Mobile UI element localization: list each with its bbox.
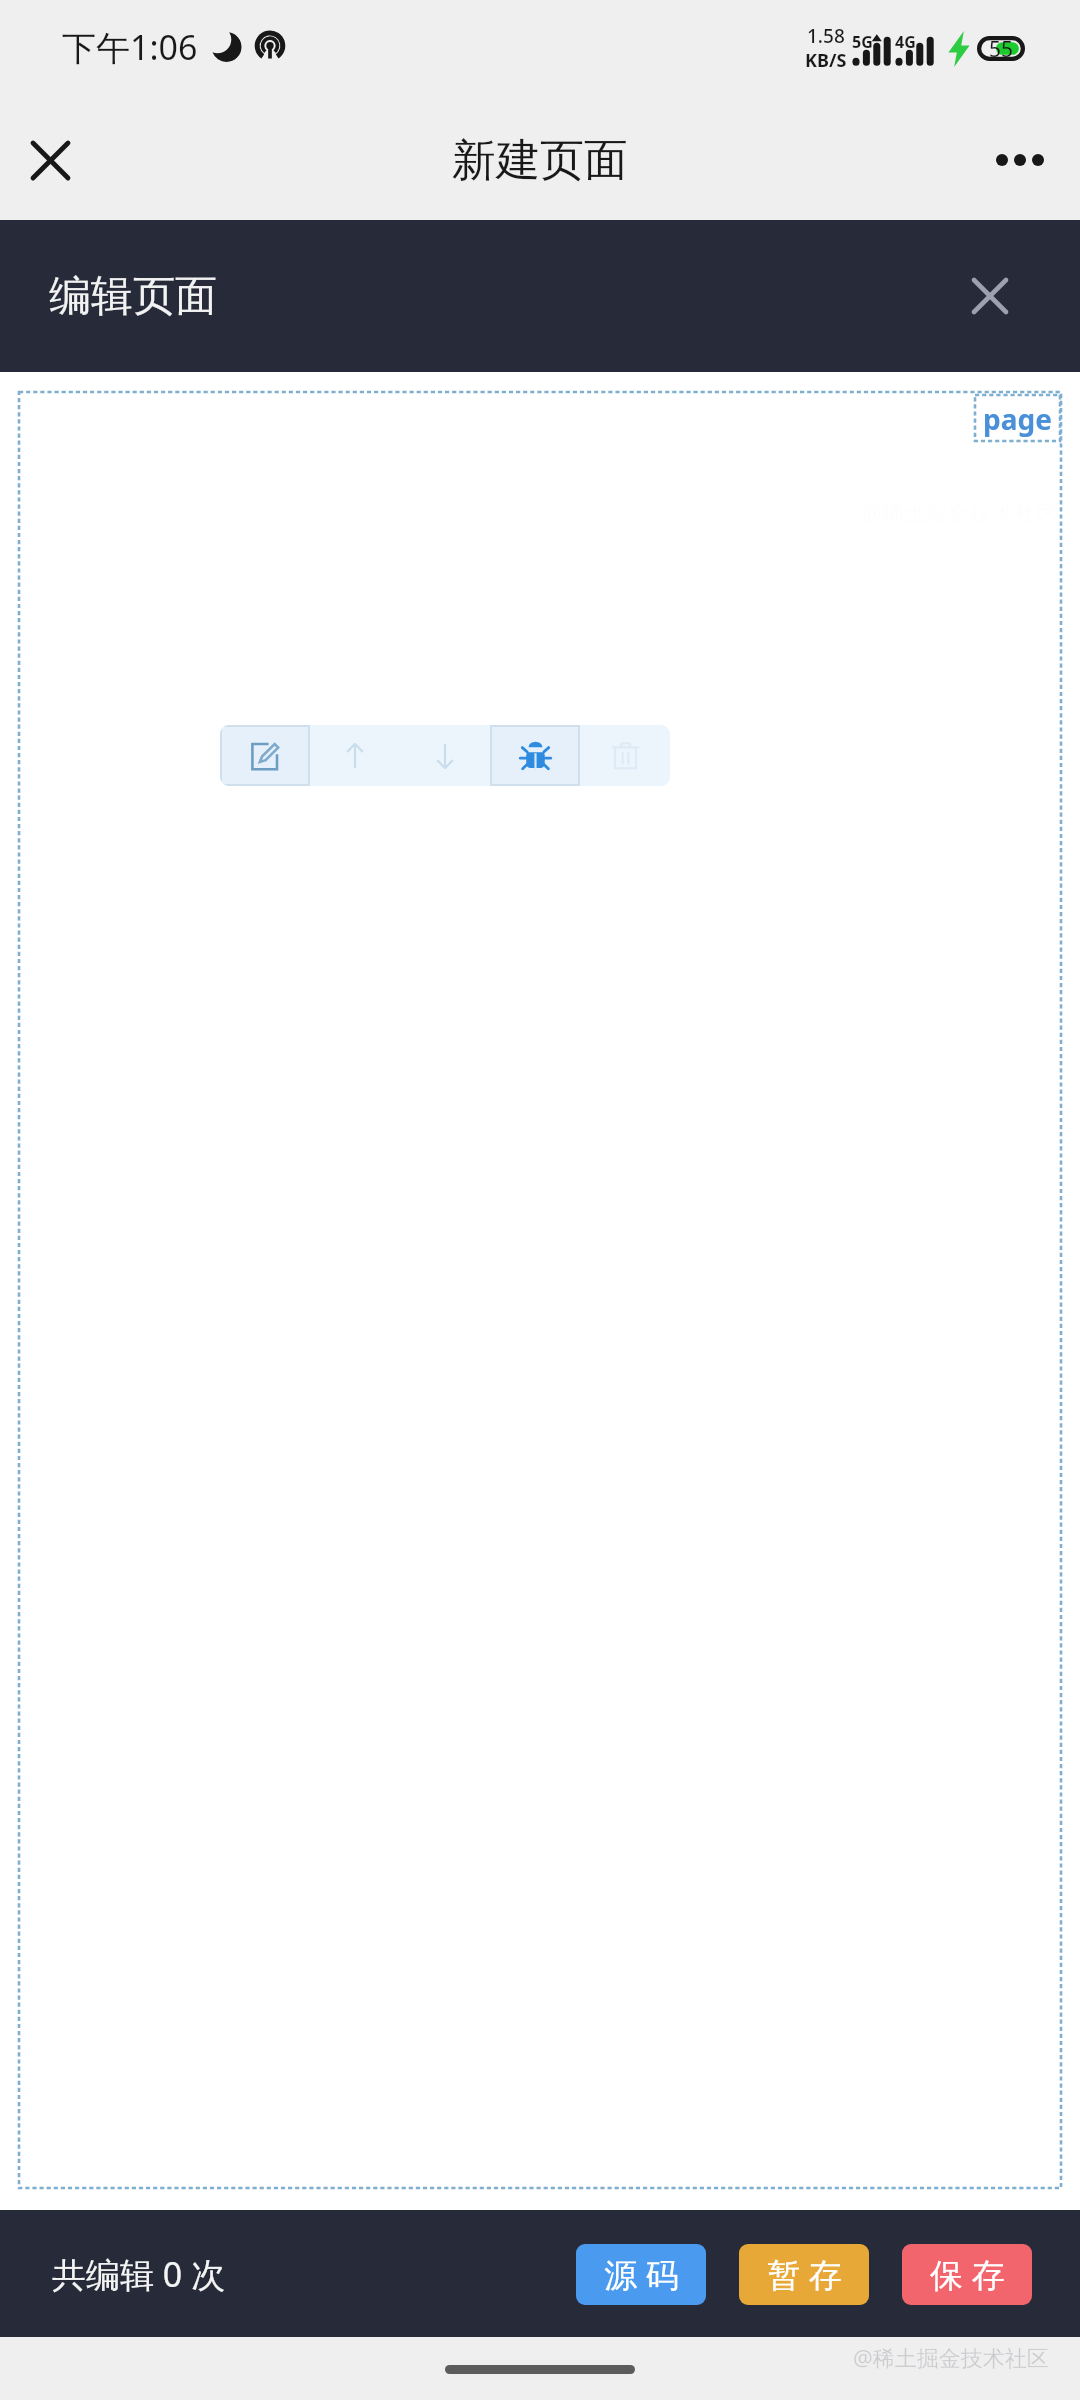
button[interactable]: Delete — [580, 725, 670, 786]
staticText: @稀土掘金技术社区 — [853, 2342, 1049, 2372]
staticText: 1.58 — [807, 23, 845, 49]
staticText: 新建页面 — [452, 133, 628, 188]
staticText: 5G — [852, 31, 873, 53]
button[interactable]: Close editor — [950, 256, 1030, 336]
staticText: 共编辑 0 次 — [52, 2251, 226, 2297]
button[interactable]: Debug — [490, 725, 580, 786]
staticText: page — [983, 400, 1052, 438]
button[interactable]: 源 码 — [576, 2244, 706, 2305]
button[interactable]: Close — [14, 124, 86, 196]
button[interactable]: page — [975, 395, 1060, 441]
staticText: KB/S — [805, 48, 847, 73]
staticText: 保 存 — [930, 2252, 1005, 2297]
button[interactable]: Move up — [310, 725, 400, 786]
button[interactable]: Edit — [220, 725, 310, 786]
staticText: 4G — [895, 31, 916, 53]
staticText: 源 码 — [604, 2252, 679, 2297]
button[interactable]: More options — [984, 124, 1056, 196]
staticText: 暂 存 — [767, 2252, 842, 2297]
staticText: 55 — [989, 35, 1014, 60]
button[interactable]: 暂 存 — [739, 2244, 869, 2305]
staticText: 下午1:06 — [62, 24, 198, 70]
button[interactable]: 保 存 — [902, 2244, 1032, 2305]
button[interactable]: Move down — [400, 725, 490, 786]
staticText: 编辑页面 — [49, 270, 217, 323]
